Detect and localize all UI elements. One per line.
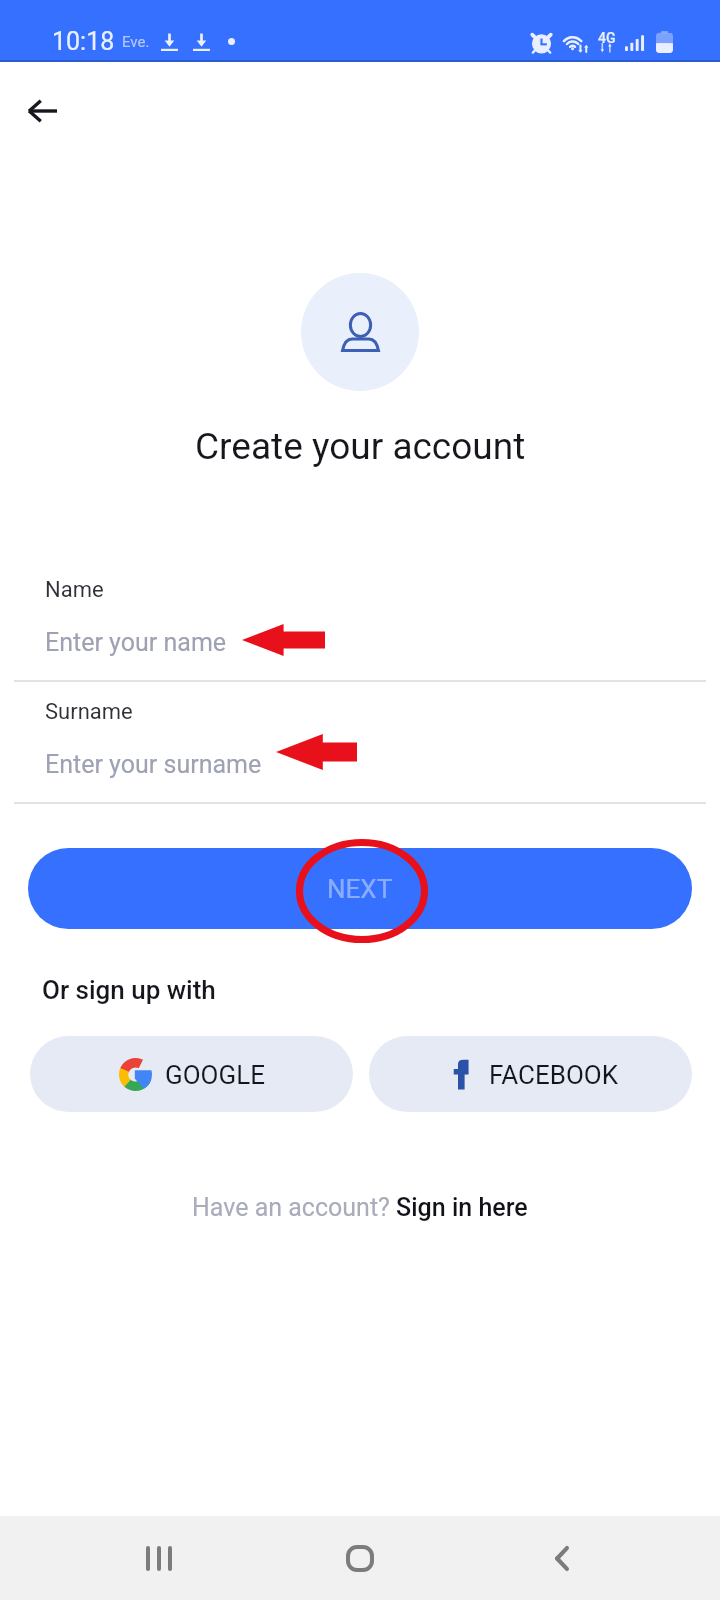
- staticText: NEXT: [327, 874, 393, 904]
- button[interactable]: GOOGLE: [30, 1036, 353, 1112]
- button[interactable]: Have an account? Sign in here: [192, 1193, 528, 1222]
- staticText: Create your account: [195, 425, 526, 468]
- staticText: GOOGLE: [165, 1060, 265, 1090]
- button[interactable]: Back: [520, 1516, 604, 1600]
- button[interactable]: Name: [0, 569, 720, 681]
- button[interactable]: Surname: [0, 691, 720, 803]
- staticText: Eve.: [122, 33, 150, 51]
- staticText: Name: [45, 577, 104, 603]
- staticText: Have an account? Sign in here: [192, 1193, 528, 1222]
- staticText: 4G: [598, 30, 616, 46]
- staticText: 10:18: [52, 27, 115, 56]
- button[interactable]: Home: [318, 1516, 402, 1600]
- staticText: Or sign up with: [42, 975, 216, 1005]
- staticText: Surname: [45, 699, 133, 725]
- staticText: Enter your name: [45, 628, 227, 657]
- button[interactable]: FACEBOOK: [369, 1036, 692, 1112]
- staticText: Enter your surname: [45, 750, 262, 779]
- button[interactable]: Back: [14, 83, 70, 139]
- staticText: FACEBOOK: [489, 1060, 619, 1090]
- button[interactable]: NEXT: [28, 848, 692, 929]
- button[interactable]: Recent apps: [117, 1516, 201, 1600]
